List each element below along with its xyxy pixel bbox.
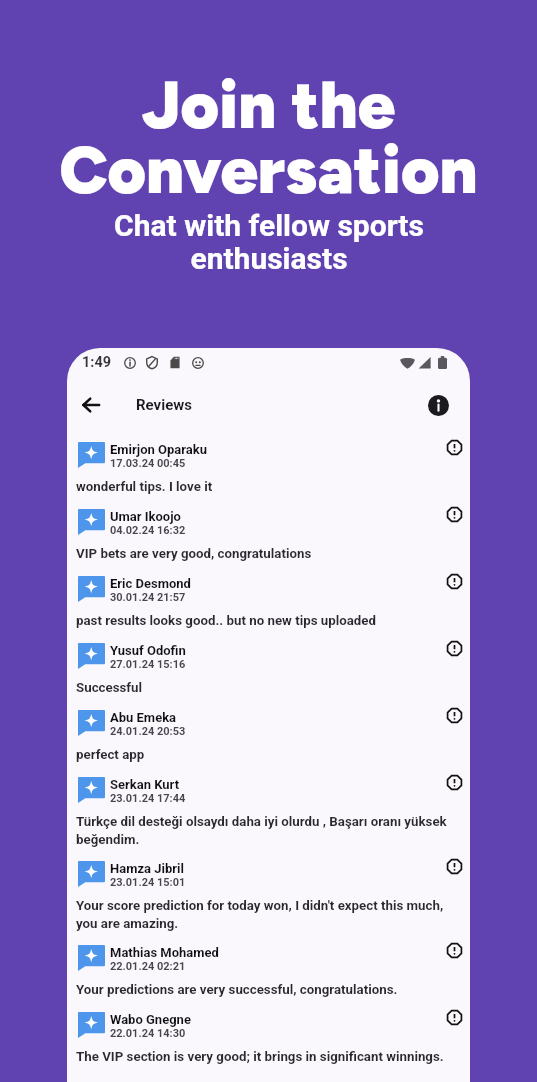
staticText: 1:49 (82, 354, 112, 371)
staticText: Emirjon Oparaku (110, 442, 207, 457)
staticText: Yusuf Odofin (110, 643, 186, 658)
button[interactable]: Report (443, 939, 465, 961)
staticText: 22.01.24 02:21 (110, 960, 186, 973)
staticText: perfect app (76, 747, 145, 763)
button[interactable]: Report (443, 1006, 465, 1028)
staticText: past results looks good.. but no new tip… (76, 613, 377, 629)
staticText: enthusiasts (190, 241, 348, 276)
staticText: Umar Ikoojo (110, 509, 181, 524)
staticText: 04.02.24 16:32 (110, 524, 186, 537)
staticText: Reviews (136, 396, 193, 414)
staticText: Chat with fellow sports (114, 208, 424, 243)
button[interactable]: Serkan Kurt (67, 769, 470, 853)
staticText: Join the Conversation (59, 65, 478, 210)
staticText: 22.01.24 14:30 (110, 1027, 186, 1040)
button[interactable]: Yusuf Odofin (67, 635, 470, 702)
button[interactable]: Wabo Gnegne (67, 1004, 470, 1071)
staticText: 23.01.24 15:01 (110, 876, 186, 889)
staticText: Türkçe dil desteği olsaydı daha iyi olur… (76, 814, 455, 847)
staticText: Serkan Kurt (110, 777, 180, 792)
button[interactable]: Report (443, 637, 465, 659)
button[interactable]: Report (443, 570, 465, 592)
staticText: 27.01.24 15:16 (110, 658, 186, 671)
staticText: VIP bets are very good, congratulations (76, 546, 312, 562)
button[interactable]: Report (443, 436, 465, 458)
staticText: Eric Desmond (110, 576, 191, 591)
staticText: Mathias Mohamed (110, 945, 219, 960)
staticText: 30.01.24 21:57 (110, 591, 186, 604)
staticText: Your predictions are very successful, co… (76, 982, 398, 998)
staticText: The VIP section is very good; it brings … (76, 1049, 444, 1065)
staticText: Successful (76, 680, 143, 696)
button[interactable]: Emirjon Oparaku (67, 434, 470, 501)
button[interactable]: Report (443, 771, 465, 793)
staticText: 24.01.24 20:53 (110, 725, 186, 738)
button[interactable]: Report (443, 503, 465, 525)
button[interactable]: Abu Emeka (67, 702, 470, 769)
button[interactable]: Info (421, 388, 455, 422)
button[interactable]: Hamza Jibril (67, 853, 470, 937)
staticText: Abu Emeka (110, 710, 177, 725)
button[interactable]: Report (443, 704, 465, 726)
button[interactable]: Mathias Mohamed (67, 937, 470, 1004)
button[interactable]: Back (71, 385, 111, 425)
button[interactable]: Report (443, 855, 465, 877)
staticText: Wabo Gnegne (110, 1012, 191, 1027)
staticText: 17.03.24 00:45 (110, 457, 186, 470)
staticText: Your score prediction for today won, I d… (76, 898, 455, 931)
button[interactable]: Eric Desmond (67, 568, 470, 635)
button[interactable]: Umar Ikoojo (67, 501, 470, 568)
staticText: wonderful tips. I love it (76, 479, 213, 495)
staticText: Hamza Jibril (110, 861, 184, 876)
staticText: 23.01.24 17:44 (110, 792, 186, 805)
